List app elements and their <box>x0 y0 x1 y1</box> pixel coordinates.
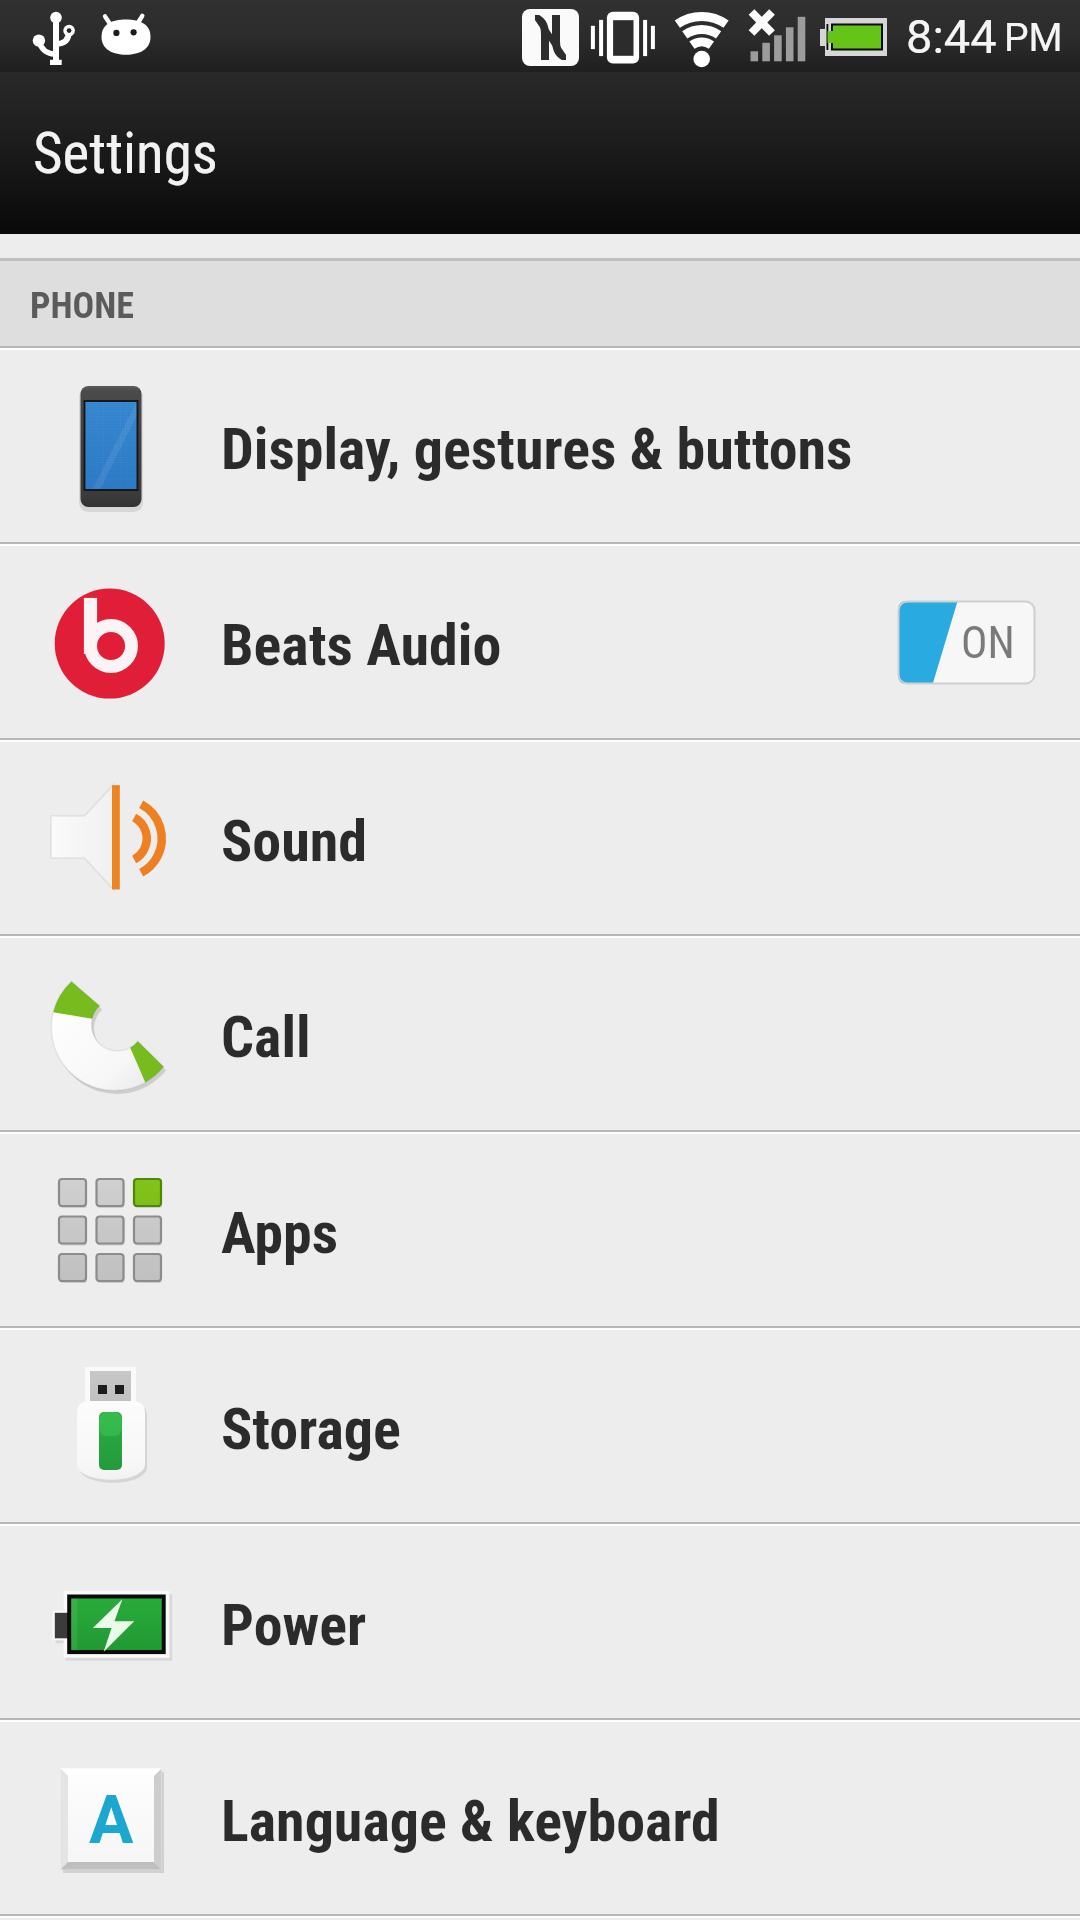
staticText: Apps <box>221 1199 339 1267</box>
staticText: Beats Audio <box>221 611 502 679</box>
staticText: A <box>89 1782 134 1859</box>
button[interactable]: Beats Audio on <box>898 601 1035 684</box>
staticText: Display, gestures & buttons <box>221 415 853 483</box>
staticText: PM <box>1004 15 1063 61</box>
button[interactable]: Sound <box>0 742 1080 934</box>
staticText: Power <box>221 1591 367 1659</box>
staticText: Language & keyboard <box>221 1787 720 1855</box>
staticText: PHONE <box>30 285 135 327</box>
staticText: ON <box>961 617 1015 669</box>
button[interactable]: A <box>0 1722 1080 1914</box>
button[interactable]: Beats Audio <box>0 546 1080 738</box>
staticText: Call <box>221 1003 311 1071</box>
button[interactable]: Call <box>0 938 1080 1130</box>
staticText: Sound <box>221 807 368 875</box>
button[interactable]: Power <box>0 1526 1080 1718</box>
staticText: 8:44 <box>906 9 997 64</box>
staticText: Settings <box>33 120 218 187</box>
button[interactable]: Storage <box>0 1330 1080 1522</box>
button[interactable]: Display, gestures & buttons <box>0 350 1080 542</box>
button[interactable]: Apps <box>0 1134 1080 1326</box>
staticText: Storage <box>221 1395 401 1463</box>
